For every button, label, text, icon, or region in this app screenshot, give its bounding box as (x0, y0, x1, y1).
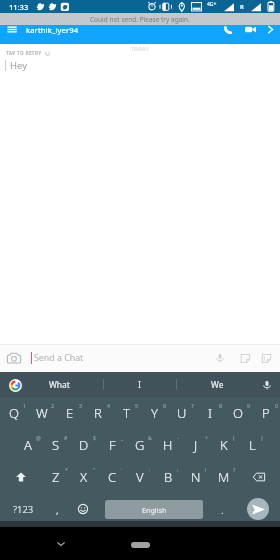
staticText: E (66, 404, 74, 422)
staticText: Z (52, 468, 60, 486)
staticText: I (208, 404, 213, 422)
button[interactable]: X (70, 461, 98, 493)
staticText: 8 (219, 402, 222, 409)
button[interactable]: F (98, 429, 126, 461)
button[interactable]: E (56, 397, 84, 429)
button[interactable]: B (154, 461, 182, 493)
button[interactable]: Z (42, 461, 70, 493)
button[interactable]: English (105, 500, 203, 519)
button[interactable]: Shift (0, 461, 42, 493)
button[interactable]: O (224, 397, 252, 429)
button[interactable]: Hide keyboard (50, 533, 72, 555)
button[interactable]: Video call (240, 20, 260, 39)
staticText: Q (9, 404, 19, 422)
staticText: $ (93, 434, 96, 441)
button[interactable]: V (126, 461, 154, 493)
staticText: TODAY (131, 46, 150, 53)
button[interactable]: ?123 (0, 493, 46, 525)
button[interactable]: I (196, 397, 224, 429)
button[interactable]: N (182, 461, 210, 493)
staticText: 0 (275, 402, 278, 409)
button[interactable]: A (14, 429, 42, 461)
staticText: ) (261, 434, 263, 441)
staticText: 11:33 (9, 2, 29, 12)
staticText: , (56, 502, 59, 517)
button[interactable]: P (252, 397, 280, 429)
staticText: 6 (163, 402, 166, 409)
button[interactable]: . (209, 493, 235, 525)
staticText: 1 (23, 402, 26, 409)
staticText: F (109, 436, 116, 454)
staticText: P (262, 404, 270, 422)
button[interactable]: Home (131, 542, 150, 548)
staticText: + (205, 434, 208, 441)
button[interactable]: L (238, 429, 266, 461)
button[interactable]: Forward (261, 20, 280, 39)
button[interactable]: , (44, 493, 70, 525)
staticText: . (221, 502, 224, 517)
staticText: # (64, 434, 68, 441)
staticText: V (136, 468, 144, 486)
staticText: Y (151, 404, 158, 422)
button[interactable]: J (182, 429, 210, 461)
staticText: O (233, 404, 243, 422)
button[interactable]: Q (0, 397, 28, 429)
staticText: We (211, 379, 224, 390)
button[interactable]: U (168, 397, 196, 429)
button[interactable]: S (42, 429, 70, 461)
staticText: ? (233, 466, 236, 473)
staticText: S (52, 436, 60, 454)
staticText: G (135, 436, 145, 454)
staticText: & (148, 434, 152, 441)
staticText: 5 (135, 402, 138, 409)
button[interactable]: D (70, 429, 98, 461)
button[interactable]: H (154, 429, 182, 461)
staticText: Hey (10, 59, 28, 72)
button[interactable]: We (184, 372, 250, 397)
staticText: * (65, 466, 68, 473)
staticText: I (138, 379, 141, 390)
staticText: C (108, 468, 117, 486)
staticText: 7 (191, 402, 194, 409)
button[interactable]: C (98, 461, 126, 493)
staticText: B (164, 468, 173, 486)
button[interactable]: Voice input (258, 376, 276, 394)
staticText: ; (177, 466, 179, 473)
staticText: J (194, 436, 198, 454)
staticText: ( (233, 434, 235, 441)
staticText: 2 (51, 402, 54, 409)
button[interactable]: Call (218, 20, 238, 39)
button[interactable]: M (210, 461, 238, 493)
staticText: - (177, 434, 179, 441)
button[interactable]: Send (247, 498, 269, 520)
staticText: M (218, 468, 230, 486)
button[interactable]: T (112, 397, 140, 429)
button[interactable]: Emoji (70, 493, 96, 525)
staticText: T (123, 404, 130, 422)
button[interactable]: What (24, 372, 94, 397)
staticText: karthik_iyer94 (26, 25, 79, 35)
button[interactable]: Y (140, 397, 168, 429)
staticText: English (142, 505, 167, 515)
staticText: ! (205, 466, 207, 473)
button[interactable]: Stickers (235, 344, 255, 372)
button[interactable]: I (106, 372, 172, 397)
staticText: Send a Chat (34, 352, 84, 364)
staticText: R (94, 404, 102, 422)
button[interactable]: Voice (210, 344, 230, 372)
staticText: R (240, 3, 244, 11)
button[interactable]: K (210, 429, 238, 461)
staticText: Could not send. Please try again. (90, 15, 190, 24)
button[interactable]: Google search (6, 376, 24, 394)
button[interactable]: R (84, 397, 112, 429)
staticText: ' (121, 466, 123, 473)
staticText: H (163, 436, 173, 454)
button[interactable]: Bitmoji (256, 344, 276, 372)
button[interactable]: G (126, 429, 154, 461)
staticText: K (220, 436, 228, 454)
button[interactable]: W (28, 397, 56, 429)
button[interactable]: Menu (0, 20, 24, 39)
staticText: 3 (79, 402, 82, 409)
button[interactable]: Camera (0, 344, 28, 372)
button[interactable]: Backspace (238, 461, 280, 493)
